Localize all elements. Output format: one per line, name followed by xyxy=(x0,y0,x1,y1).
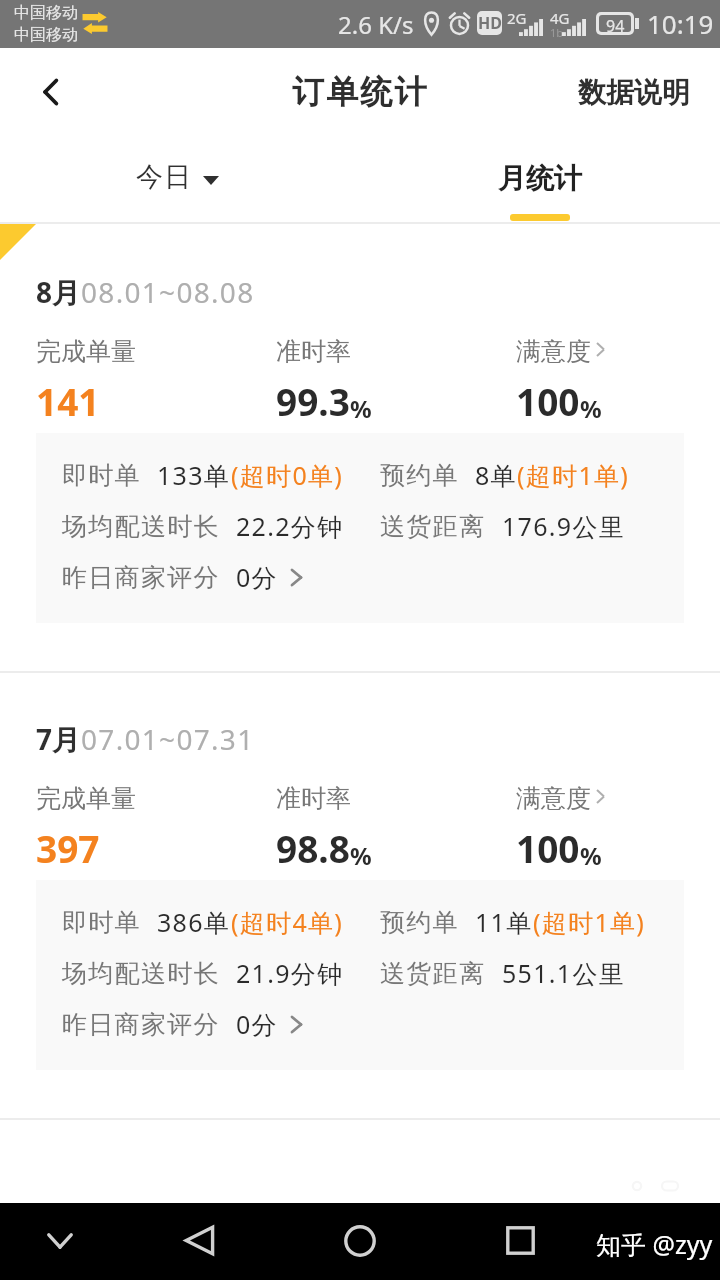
staticText: 数据说明 xyxy=(578,75,690,110)
staticText: 7月 xyxy=(36,720,81,758)
staticText: 送货距离 xyxy=(380,511,486,542)
button[interactable]: 数据说明 xyxy=(562,53,720,132)
staticText: 完成单量 xyxy=(36,336,136,367)
staticText: 预约单 xyxy=(380,907,459,938)
button[interactable]: 月统计 xyxy=(474,136,606,221)
staticText: 386单 xyxy=(157,905,231,939)
staticText: 中国移动 xyxy=(14,3,78,23)
staticText: 准时率 xyxy=(276,783,351,814)
staticText: 送货距离 xyxy=(380,958,486,989)
button[interactable]: Recents xyxy=(478,1203,562,1280)
staticText: 知乎 @zyy xyxy=(596,1227,713,1261)
staticText: 准时率 xyxy=(276,336,351,367)
staticText: 满意度 xyxy=(516,336,591,367)
staticText: 昨日商家评分 xyxy=(62,1009,220,1040)
staticText: 2.6 K/s xyxy=(338,8,414,41)
staticText: 满意度 xyxy=(516,783,591,814)
staticText: 100 xyxy=(516,376,580,426)
button[interactable]: 昨日商家评分 xyxy=(46,997,319,1051)
staticText: 98.8 xyxy=(276,823,350,873)
staticText: 今日 xyxy=(136,160,193,194)
staticText: 完成单量 xyxy=(36,783,136,814)
staticText: 2G xyxy=(507,8,527,28)
button[interactable]: Hide keyboard xyxy=(18,1203,102,1280)
staticText: 22.2分钟 xyxy=(236,509,344,543)
staticText: 即时单 xyxy=(62,907,141,938)
staticText: 10:19 xyxy=(647,6,714,41)
staticText: 场均配送时长 xyxy=(62,511,220,542)
staticText: (超时1单) xyxy=(533,905,646,939)
button[interactable]: Back xyxy=(0,48,92,136)
button[interactable]: 今日 xyxy=(118,144,237,210)
staticText: 预约单 xyxy=(380,460,459,491)
staticText: 4G xyxy=(550,8,570,28)
button[interactable]: 昨日商家评分 xyxy=(46,550,319,604)
staticText: 0分 xyxy=(236,1007,278,1041)
staticText: 昨日商家评分 xyxy=(62,562,220,593)
staticText: 即时单 xyxy=(62,460,141,491)
staticText: 100 xyxy=(516,823,580,873)
staticText: 月统计 xyxy=(498,161,582,196)
staticText: 订单统计 xyxy=(292,72,429,112)
button[interactable]: 满意度 xyxy=(516,336,605,426)
staticText: % xyxy=(350,392,372,425)
staticText: % xyxy=(350,839,372,872)
staticText: % xyxy=(580,839,602,872)
button[interactable]: 满意度 xyxy=(516,783,605,873)
staticText: 99.3 xyxy=(276,376,350,426)
staticText: HD xyxy=(478,12,502,34)
staticText: 21.9分钟 xyxy=(236,956,344,990)
staticText: 94 xyxy=(606,15,625,32)
staticText: 1b xyxy=(550,25,564,40)
staticText: 8月 xyxy=(36,273,81,311)
staticText: 133单 xyxy=(157,458,231,492)
staticText: 场均配送时长 xyxy=(62,958,220,989)
staticText: (超时4单) xyxy=(231,905,344,939)
staticText: 141 xyxy=(36,376,100,426)
staticText: 0分 xyxy=(236,560,278,594)
staticText: (超时1单) xyxy=(517,458,630,492)
staticText: % xyxy=(580,392,602,425)
staticText: (超时0单) xyxy=(231,458,344,492)
button[interactable]: Back xyxy=(158,1203,242,1280)
staticText: 中国移动 xyxy=(14,25,78,45)
staticText: 551.1公里 xyxy=(502,956,626,990)
staticText: 8单 xyxy=(475,458,517,492)
staticText: 08.01~08.08 xyxy=(81,273,255,311)
staticText: 11单 xyxy=(475,905,533,939)
staticText: 397 xyxy=(36,823,100,873)
button[interactable]: Home xyxy=(318,1203,402,1280)
staticText: 176.9公里 xyxy=(502,509,626,543)
staticText: 07.01~07.31 xyxy=(81,720,255,758)
